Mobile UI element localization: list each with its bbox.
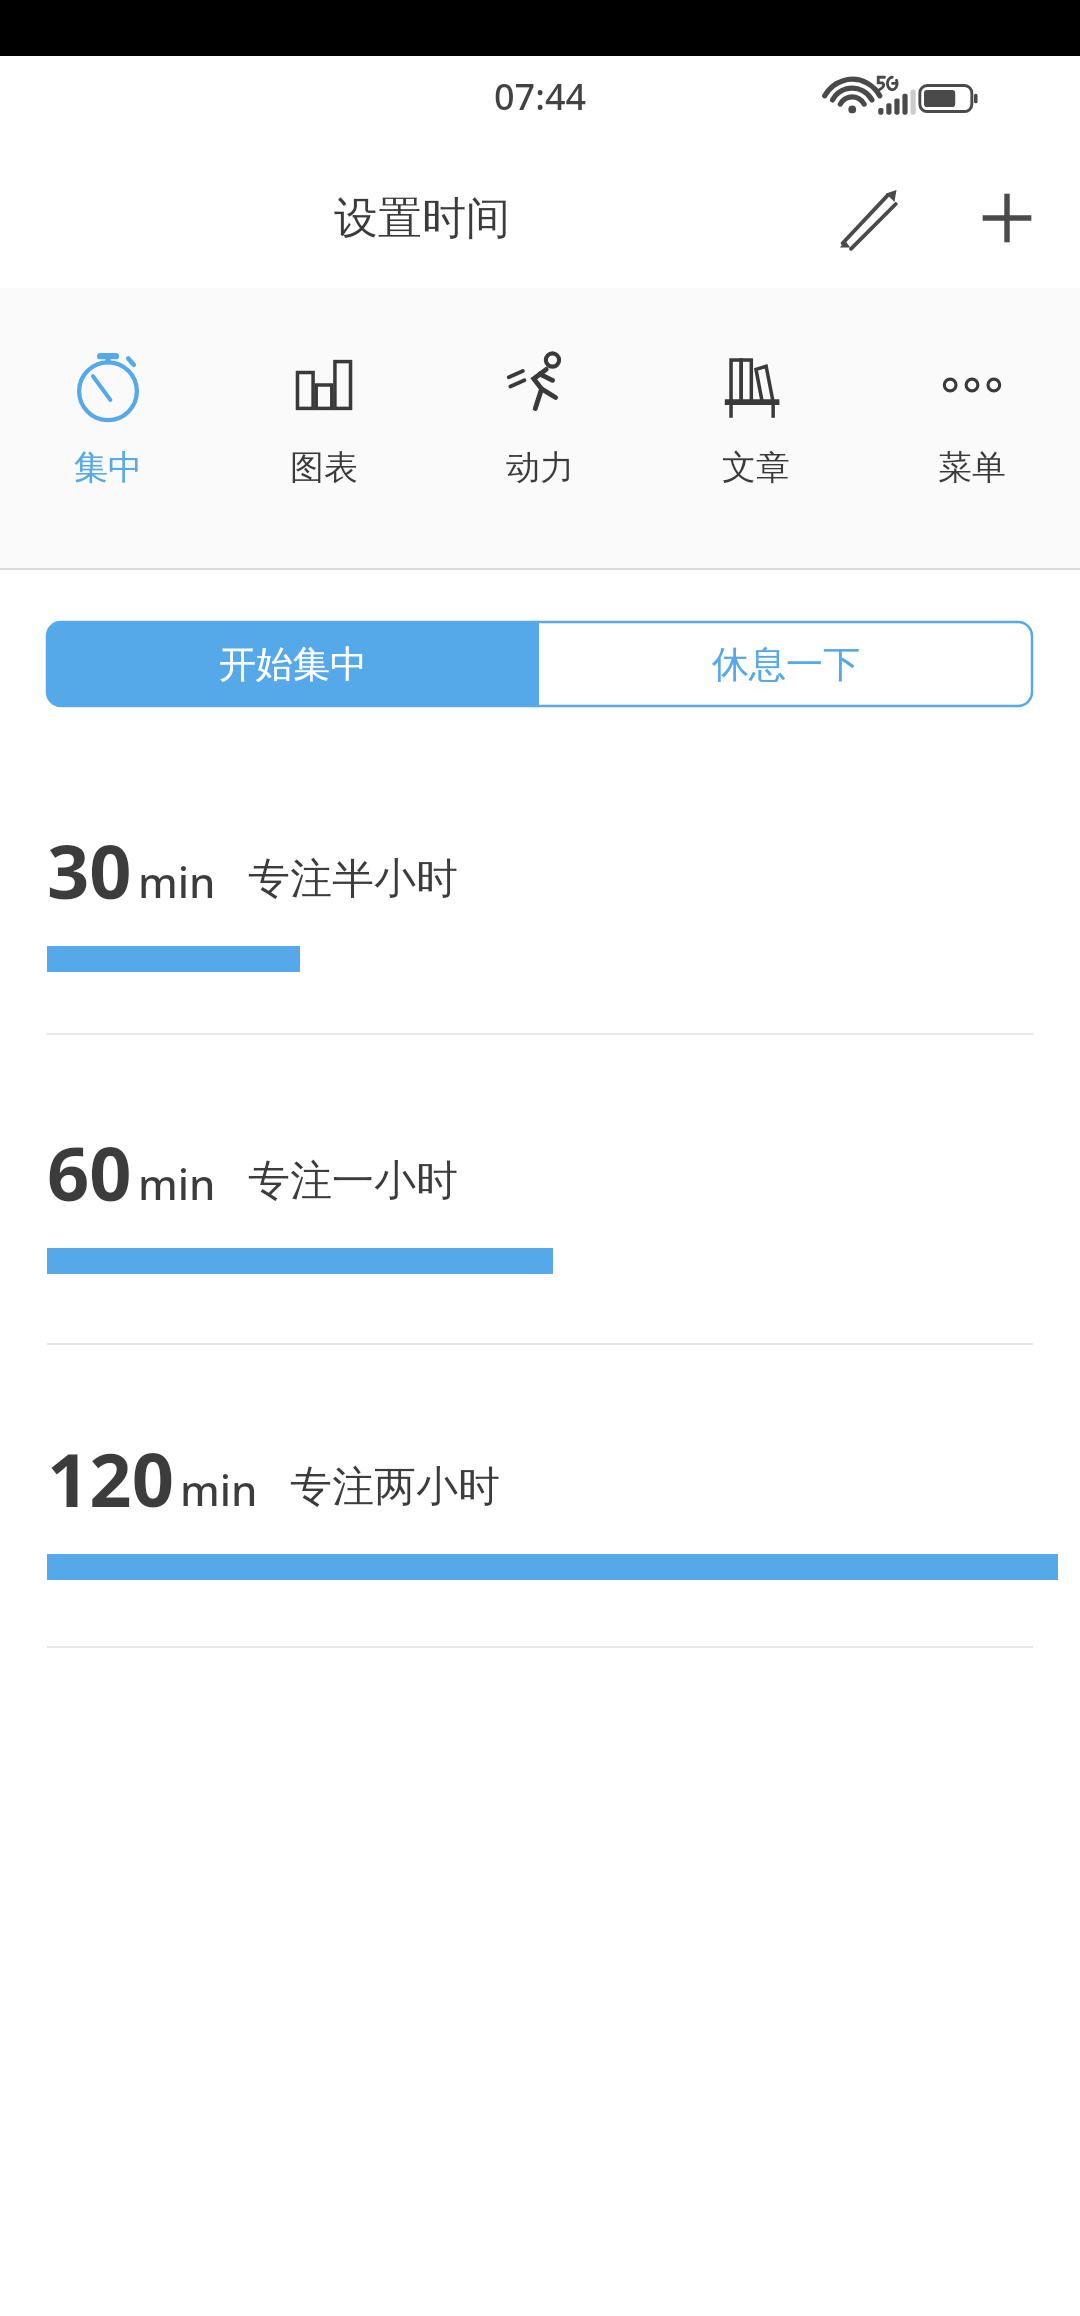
staticText: 设置时间 [334,191,510,246]
staticText: 07:44 [494,72,587,121]
button[interactable]: 图表 [216,288,432,568]
staticText: min [180,1461,258,1518]
staticText: 120 [47,1428,174,1524]
staticText: 专注一小时 [248,1155,458,1208]
staticText: min [138,853,216,910]
staticText: 图表 [290,446,358,489]
staticText: 动力 [506,446,574,489]
staticText: min [138,1155,216,1212]
staticText: 休息一下 [712,641,860,688]
button[interactable]: 动力 [432,288,648,568]
staticText: 专注半小时 [248,853,458,906]
staticText: 60 [47,1122,132,1218]
staticText: 专注两小时 [290,1461,500,1514]
button[interactable]: 120 [0,1398,1080,1648]
staticText: 开始集中 [219,641,367,688]
button[interactable]: 30 [0,790,1080,1035]
button[interactable]: 文章 [648,288,864,568]
staticText: 30 [47,820,132,916]
staticText: 集中 [74,446,142,489]
button[interactable]: Add [952,163,1062,273]
staticText: 菜单 [938,446,1006,489]
button[interactable]: Edit [810,163,920,273]
button[interactable]: 60 [0,1092,1080,1345]
button[interactable]: 菜单 [864,288,1080,568]
button[interactable]: 集中 [0,288,216,568]
button[interactable]: 休息一下 [539,622,1032,706]
button[interactable]: 开始集中 [47,622,539,706]
staticText: 文章 [722,446,790,489]
